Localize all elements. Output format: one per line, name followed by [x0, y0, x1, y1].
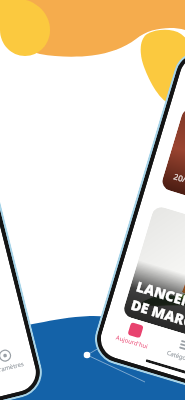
button[interactable]: COLLECTION: [160, 106, 185, 222]
staticText: Aujourd'hui: [115, 334, 149, 351]
staticText: DE MARQUE: [129, 295, 185, 337]
staticText: 20/03: [172, 170, 185, 187]
button[interactable]: Catégories: [161, 331, 185, 368]
button[interactable]: Aujourd'hui: [111, 316, 158, 354]
staticText: Paramètres: [0, 360, 25, 375]
staticText: LANCEMENT: [134, 277, 185, 320]
staticText: Catégories: [166, 349, 185, 365]
button[interactable]: Paramètres: [0, 345, 25, 376]
button[interactable]: LANCEMENT: [122, 205, 185, 350]
